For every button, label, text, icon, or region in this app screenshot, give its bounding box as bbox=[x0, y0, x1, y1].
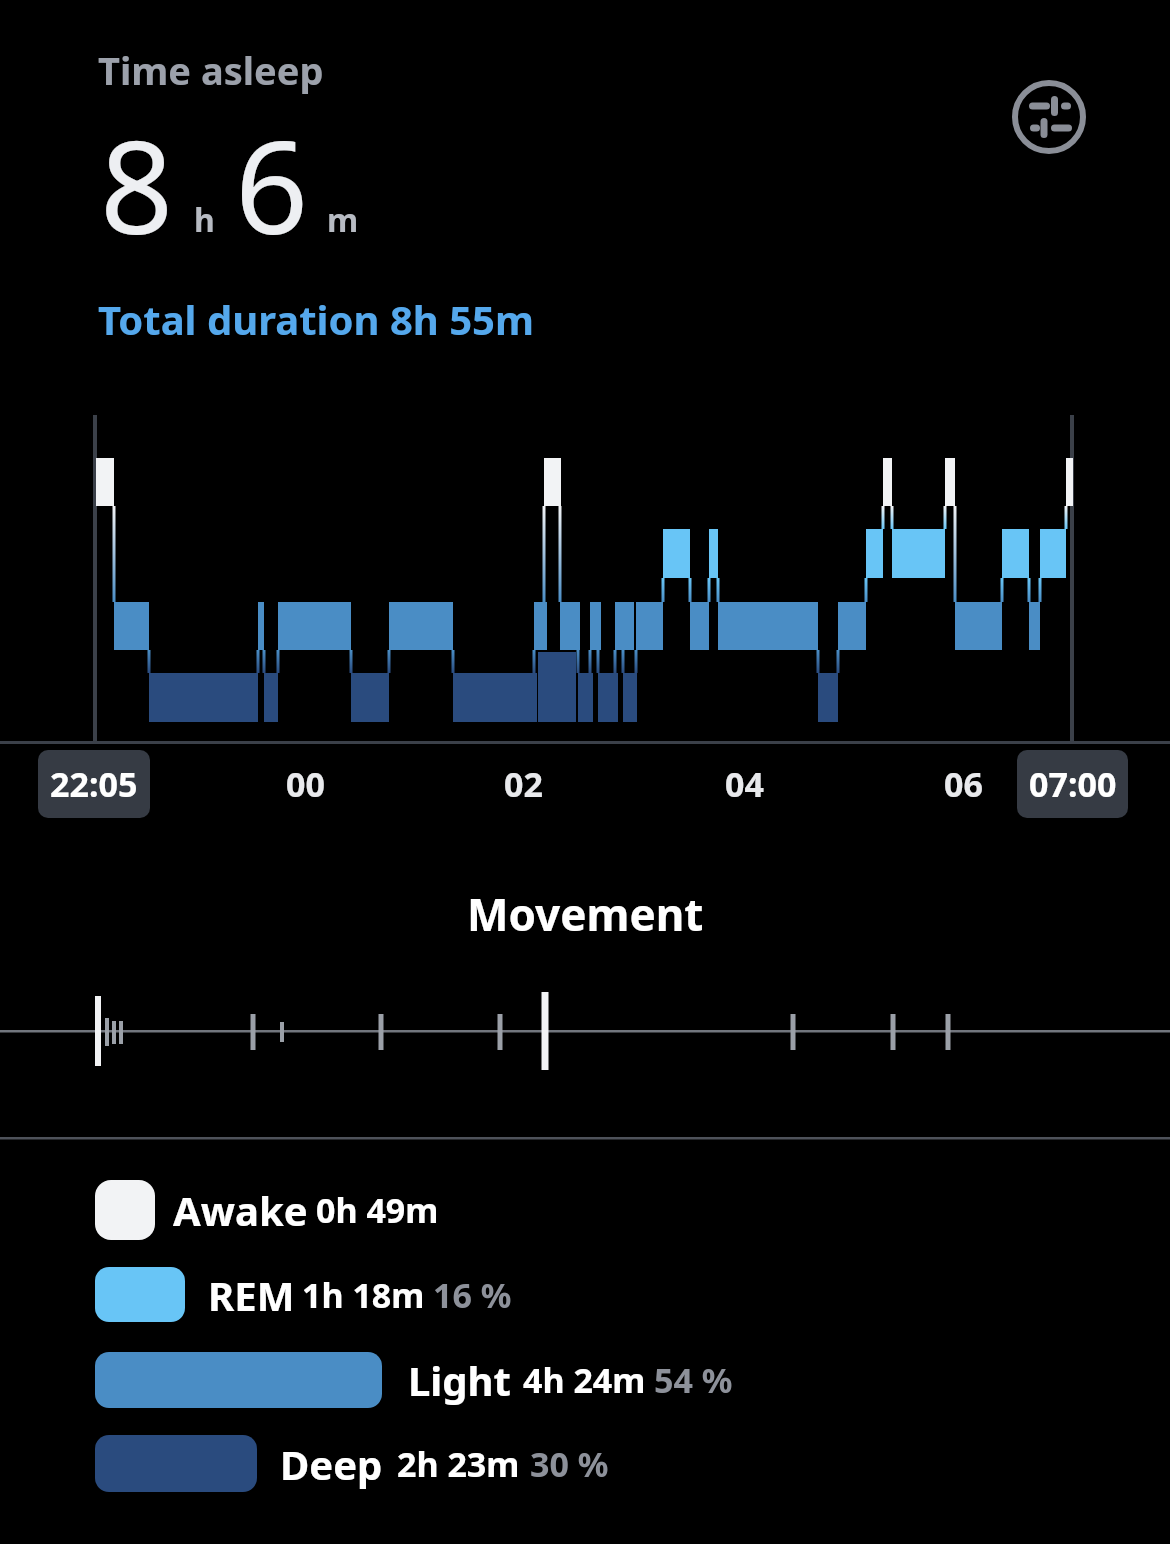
staticText: Light bbox=[408, 1353, 511, 1407]
staticText: 54 % bbox=[654, 1357, 733, 1403]
staticText: 02 bbox=[504, 761, 543, 807]
staticText: Time asleep bbox=[98, 44, 324, 96]
staticText: 22:05 bbox=[50, 761, 138, 807]
staticText: 4h 24m bbox=[523, 1357, 646, 1403]
staticText: 06 bbox=[944, 761, 983, 807]
button[interactable] bbox=[1013, 81, 1085, 153]
staticText: 1h 18m bbox=[302, 1272, 425, 1318]
staticText: REM bbox=[208, 1268, 295, 1322]
staticText: 0h 49m bbox=[316, 1187, 439, 1233]
staticText: Awake bbox=[173, 1183, 308, 1237]
staticText: 8 bbox=[100, 97, 174, 271]
staticText: 6 bbox=[235, 97, 309, 271]
staticText: Total duration 8h 55m bbox=[98, 292, 534, 346]
staticText: 00 bbox=[286, 761, 325, 807]
staticText: 2h 23m bbox=[397, 1441, 520, 1487]
staticText: 07:00 bbox=[1029, 761, 1117, 807]
staticText: h bbox=[194, 198, 215, 242]
staticText: Deep bbox=[280, 1437, 383, 1491]
staticText: 04 bbox=[725, 761, 764, 807]
staticText: Movement bbox=[467, 884, 704, 944]
staticText: 30 % bbox=[530, 1441, 609, 1487]
staticText: m bbox=[327, 198, 359, 242]
staticText: 16 % bbox=[433, 1272, 512, 1318]
